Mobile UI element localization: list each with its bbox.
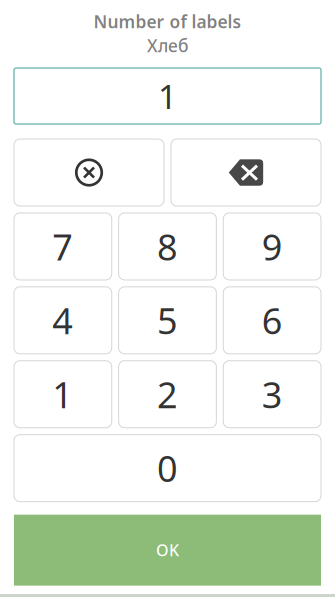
button[interactable]: 5	[119, 287, 216, 354]
button[interactable]: 1	[14, 361, 112, 428]
staticText: 1	[52, 370, 73, 418]
staticText: Number of labels	[93, 10, 241, 33]
staticText: 5	[157, 296, 178, 344]
button[interactable]: OK	[14, 515, 321, 586]
button[interactable]: 7	[14, 213, 112, 280]
staticText: Хлеб	[147, 34, 188, 57]
button[interactable]: Clear	[14, 139, 164, 206]
staticText: 8	[157, 222, 178, 270]
staticText: 6	[262, 296, 283, 344]
button[interactable]: 3	[223, 361, 321, 428]
button[interactable]: 0	[14, 435, 321, 502]
button[interactable]: 4	[14, 287, 112, 354]
staticText: OK	[156, 539, 179, 561]
staticText: 1	[158, 74, 177, 118]
staticText: 0	[157, 444, 178, 492]
staticText: 7	[52, 222, 73, 270]
staticText: 3	[262, 370, 283, 418]
staticText: 9	[262, 222, 283, 270]
button[interactable]: 8	[119, 213, 216, 280]
button[interactable]: 2	[119, 361, 216, 428]
staticText: 2	[157, 370, 178, 418]
button[interactable]: 6	[223, 287, 321, 354]
button[interactable]: 9	[223, 213, 321, 280]
staticText: 4	[52, 296, 73, 344]
button[interactable]: Backspace	[171, 139, 321, 206]
